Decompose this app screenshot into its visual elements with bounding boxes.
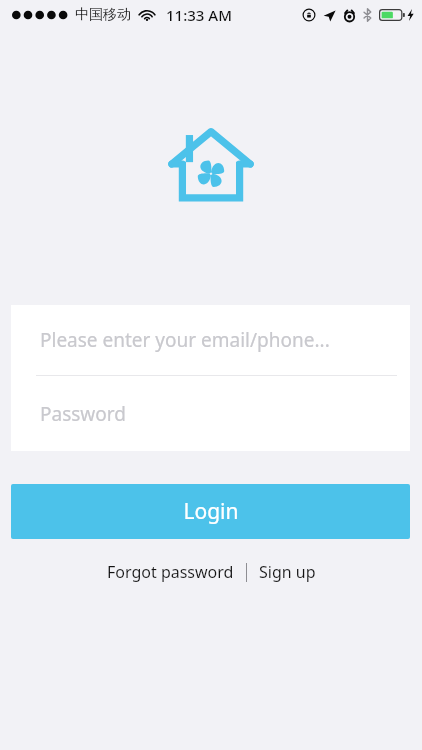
button[interactable]: Password bbox=[11, 376, 410, 451]
staticText: Forgot password bbox=[107, 561, 234, 583]
staticText: Password bbox=[40, 401, 126, 427]
staticText: Login bbox=[183, 497, 239, 526]
staticText: 中国移动 bbox=[75, 6, 131, 24]
staticText: Please enter your email/phone... bbox=[40, 327, 330, 353]
staticText: Sign up bbox=[259, 561, 316, 583]
button[interactable]: Forgot password bbox=[102, 556, 239, 588]
button[interactable]: Please enter your email/phone... bbox=[11, 305, 410, 375]
button[interactable]: Login bbox=[11, 484, 410, 539]
button[interactable]: Sign up bbox=[254, 556, 321, 588]
staticText: 11:33 AM bbox=[166, 5, 232, 25]
